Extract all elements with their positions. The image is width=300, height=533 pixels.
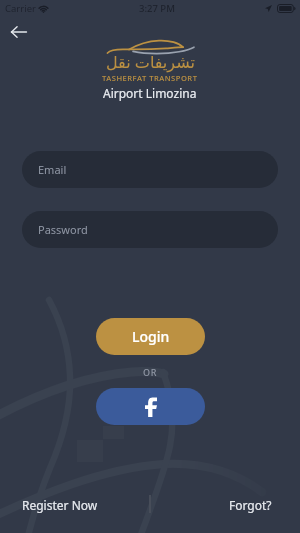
staticText: Register Now	[22, 497, 98, 513]
staticText: Login	[132, 327, 170, 346]
staticText: Forgot?	[229, 497, 272, 513]
button[interactable]: Back	[6, 19, 32, 45]
staticText: 3:27 PM	[139, 2, 175, 15]
staticText: TASHERFAT TRANSPORT	[102, 73, 198, 83]
staticText: Password	[38, 222, 88, 237]
button[interactable]: Password	[22, 211, 278, 248]
button[interactable]: Sign in with Facebook	[96, 388, 205, 425]
button[interactable]: Email	[22, 151, 278, 188]
button[interactable]: Login	[96, 318, 205, 355]
staticText: تشريفات نقل	[106, 51, 195, 73]
button[interactable]: Register Now	[16, 493, 104, 517]
button[interactable]: Forgot?	[223, 493, 278, 517]
staticText: Email	[38, 162, 67, 177]
staticText: Carrier	[5, 2, 36, 15]
staticText: Airport Limozina	[103, 85, 197, 101]
staticText: OR	[143, 366, 157, 378]
